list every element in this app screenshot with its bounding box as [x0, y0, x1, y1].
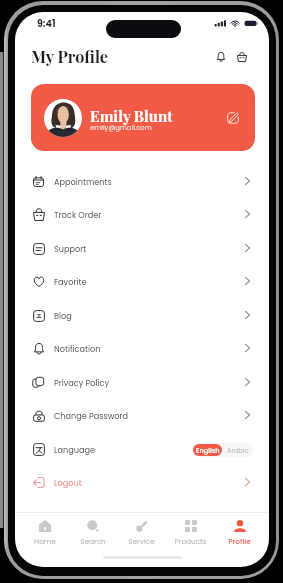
- staticText: Notification: [54, 343, 101, 354]
- button[interactable]: Logout: [15, 466, 269, 499]
- staticText: English: [196, 446, 220, 455]
- button[interactable]: Support: [15, 232, 269, 265]
- button[interactable]: Privacy Policy: [15, 366, 269, 399]
- button[interactable]: Notifications: [211, 47, 230, 66]
- staticText: Home: [34, 536, 56, 546]
- staticText: Search: [80, 536, 106, 546]
- staticText: Blog: [54, 310, 72, 321]
- button[interactable]: Shopping bag: [232, 47, 251, 66]
- staticText: Support: [54, 243, 87, 254]
- staticText: Language: [54, 444, 95, 455]
- staticText: 9:41: [37, 17, 56, 30]
- staticText: emily@gmail.com: [90, 123, 152, 133]
- button[interactable]: Track Order: [15, 198, 269, 231]
- staticText: Profile: [228, 536, 251, 546]
- button[interactable]: Arabic: [223, 444, 252, 456]
- staticText: Service: [128, 536, 155, 546]
- button[interactable]: Service: [117, 512, 166, 546]
- button[interactable]: Home: [21, 512, 69, 546]
- button[interactable]: Change Password: [15, 399, 269, 432]
- staticText: My Profile: [31, 45, 109, 67]
- button[interactable]: Blog: [15, 299, 269, 332]
- staticText: Change Password: [54, 410, 129, 421]
- staticText: Appointments: [54, 176, 112, 187]
- staticText: Products: [174, 536, 207, 546]
- button[interactable]: Products: [166, 512, 215, 546]
- button[interactable]: Profile: [215, 512, 264, 546]
- staticText: Track Order: [54, 209, 102, 220]
- staticText: Logout: [54, 477, 82, 488]
- staticText: Arabic: [227, 446, 249, 455]
- button[interactable]: Notification: [15, 332, 269, 365]
- staticText: Emily Blunt: [90, 106, 173, 126]
- staticText: Favorite: [54, 276, 87, 287]
- button[interactable]: Emily Blunt: [31, 84, 255, 151]
- button[interactable]: English: [193, 444, 222, 456]
- button[interactable]: Favorite: [15, 265, 269, 298]
- staticText: Privacy Policy: [54, 377, 109, 388]
- button[interactable]: Search: [69, 512, 117, 546]
- button[interactable]: Language: [15, 433, 269, 466]
- button[interactable]: Edit profile: [221, 106, 244, 129]
- button[interactable]: Appointments: [15, 165, 269, 198]
